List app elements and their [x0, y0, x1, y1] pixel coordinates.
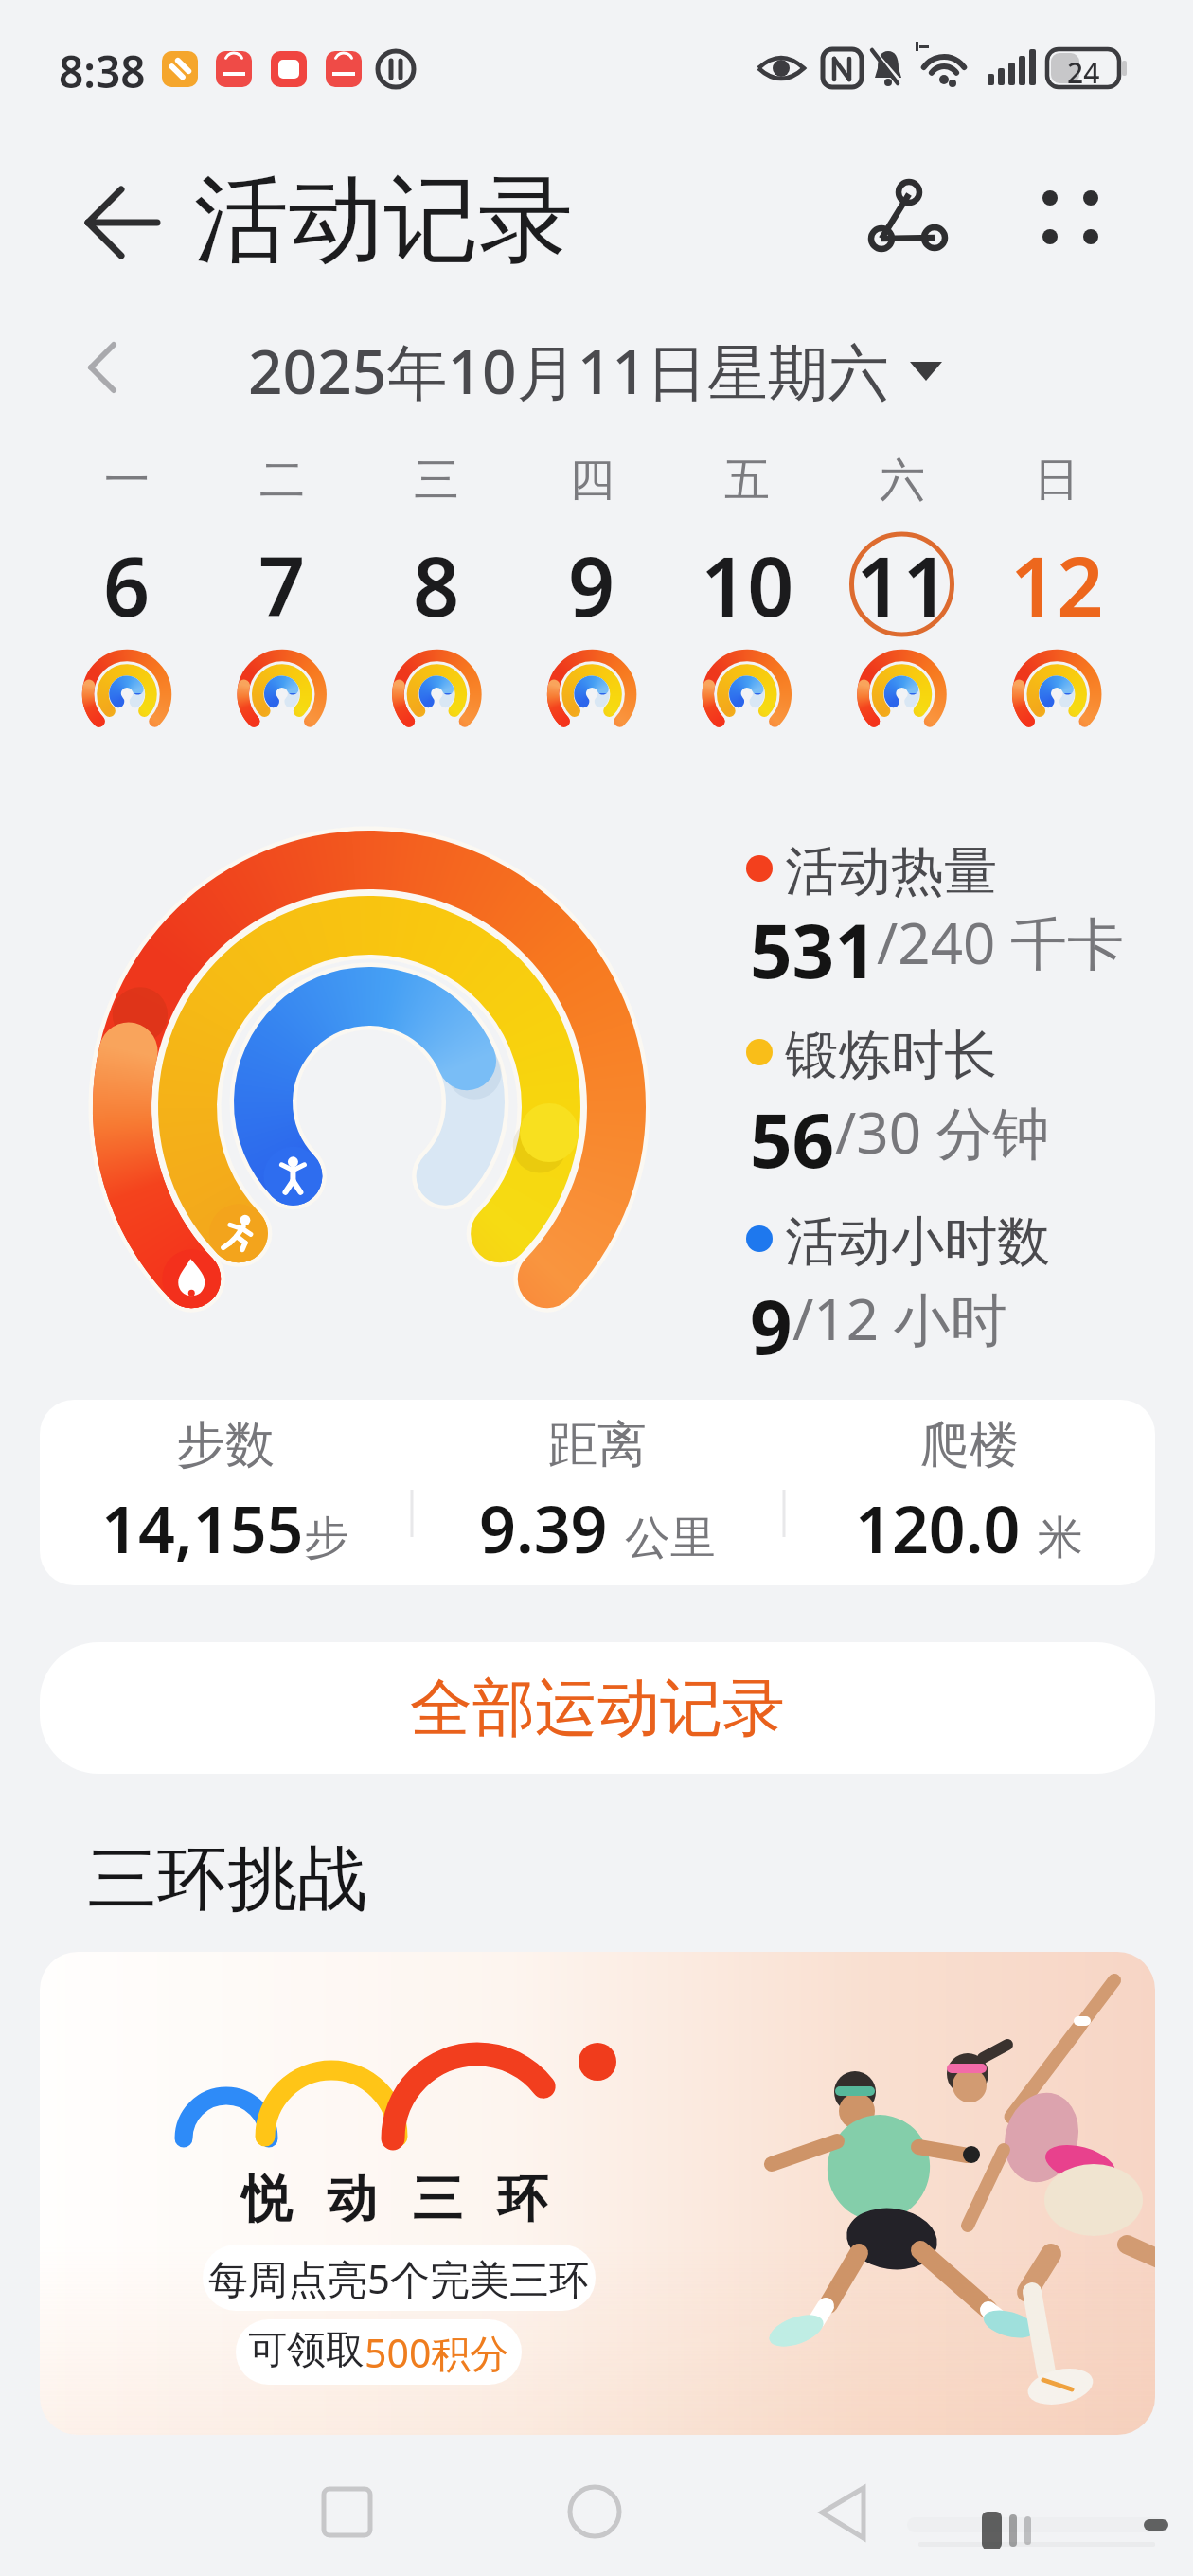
staticText: 120.0 [855, 1484, 1038, 1572]
button[interactable] [360, 445, 513, 739]
staticText: 三 [414, 452, 459, 509]
staticText: 步数 [176, 1414, 275, 1476]
staticText: 56 [750, 1089, 835, 1176]
staticText: 公里 [625, 1510, 716, 1566]
staticText: 9 [568, 529, 615, 640]
button[interactable] [50, 445, 204, 739]
staticText: 8:38 [59, 42, 146, 95]
staticText: 531 [750, 900, 877, 987]
button[interactable] [826, 445, 979, 739]
staticText: 12 [1010, 529, 1104, 640]
staticText: 7 [258, 529, 306, 640]
button[interactable]: 全部运动记录 [40, 1642, 1155, 1774]
staticText: 日 [1034, 452, 1079, 509]
button[interactable] [76, 185, 170, 260]
button[interactable] [852, 166, 966, 270]
staticText: 10 [701, 529, 794, 640]
staticText: 距离 [548, 1414, 647, 1476]
staticText: 三环挑战 [87, 1835, 367, 1923]
staticText: /240 千卡 [877, 903, 1124, 981]
button[interactable]: 悦动三环 [40, 1952, 1155, 2435]
staticText: 每周点亮5个完美三环 [208, 2251, 590, 2305]
staticText: 二 [259, 452, 305, 509]
staticText: 悦动三环 [224, 2168, 565, 2231]
staticText: 可领取 [248, 2326, 365, 2375]
staticText: 9.39 [479, 1484, 625, 1572]
staticText: 五 [724, 452, 770, 509]
button[interactable] [980, 445, 1133, 739]
button[interactable] [670, 445, 824, 739]
staticText: 8 [413, 529, 460, 640]
staticText: 11 [856, 529, 950, 640]
staticText: 锻炼时长 [785, 1022, 997, 1082]
button[interactable] [1023, 170, 1117, 265]
staticText: 爬楼 [920, 1414, 1019, 1476]
button[interactable] [299, 2464, 394, 2559]
button[interactable] [547, 2464, 642, 2559]
staticText: 一 [104, 452, 150, 509]
button[interactable] [76, 327, 966, 408]
staticText: 2025年10月11日星期六 [248, 330, 889, 405]
staticText: 活动小时数 [785, 1208, 1050, 1269]
staticText: /30 分钟 [835, 1093, 1050, 1171]
staticText: 米 [1038, 1510, 1083, 1566]
button[interactable] [797, 2464, 892, 2559]
staticText: 24 [1067, 53, 1100, 85]
staticText: 四 [569, 452, 614, 509]
button[interactable] [515, 445, 668, 739]
staticText: 500积分 [365, 2326, 509, 2379]
staticText: 活动热量 [785, 838, 997, 899]
staticText: 14,155 [101, 1484, 304, 1572]
button[interactable] [205, 445, 359, 739]
staticText: 六 [880, 452, 925, 509]
staticText: 9 [750, 1276, 792, 1363]
button[interactable]: 步数 [40, 1400, 1155, 1585]
staticText: /12 小时 [792, 1279, 1007, 1357]
staticText: 步 [304, 1510, 349, 1566]
staticText: 活动记录 [194, 161, 573, 280]
staticText: 6 [103, 529, 151, 640]
staticText: 全部运动记录 [410, 1669, 785, 1747]
